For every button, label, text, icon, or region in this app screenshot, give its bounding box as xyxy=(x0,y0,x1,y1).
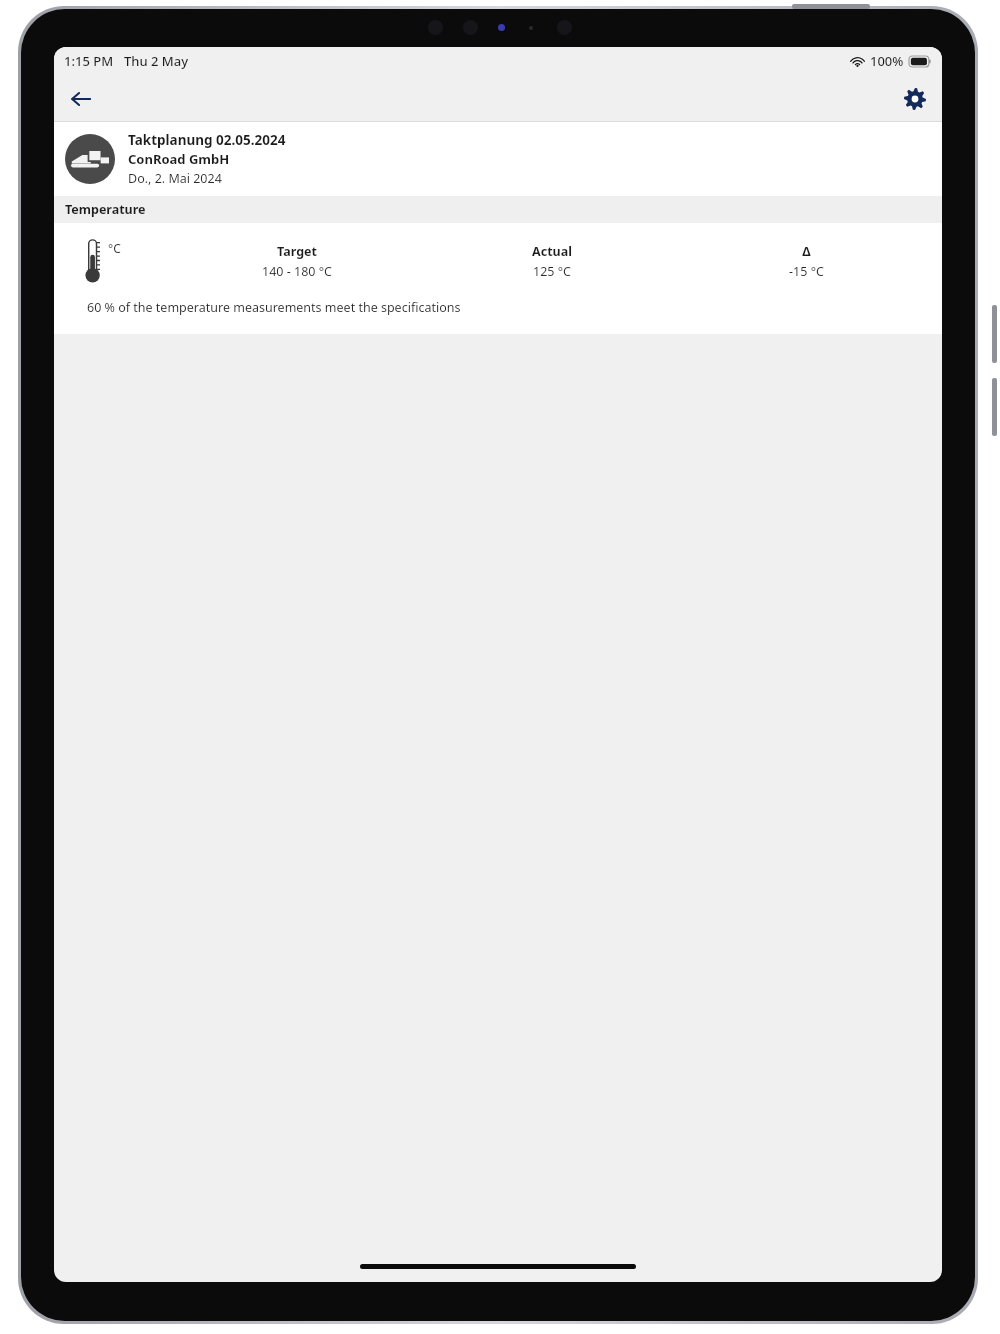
staticText: 100% xyxy=(870,52,904,70)
staticText: Target xyxy=(277,243,317,260)
staticText: 125 °C xyxy=(533,263,571,280)
staticText: ConRoad GmbH xyxy=(128,150,230,168)
staticText: 1:15 PM xyxy=(64,52,114,70)
staticText: Δ xyxy=(802,243,811,260)
staticText: 60 % of the temperature measurements mee… xyxy=(87,299,461,316)
staticText: Actual xyxy=(532,243,572,260)
staticText: 140 - 180 °C xyxy=(262,263,332,280)
staticText: °C xyxy=(108,240,121,256)
button[interactable]: Settings xyxy=(893,77,937,121)
staticText: Temperature xyxy=(65,201,146,218)
staticText: Do., 2. Mai 2024 xyxy=(128,170,222,187)
button[interactable]: °C xyxy=(54,223,942,334)
button[interactable]: Back xyxy=(59,77,103,121)
staticText: Thu 2 May xyxy=(124,52,189,70)
staticText: Taktplanung 02.05.2024 xyxy=(128,131,286,149)
staticText: -15 °C xyxy=(789,263,824,280)
button[interactable]: Taktplanung 02.05.2024 xyxy=(54,122,942,196)
